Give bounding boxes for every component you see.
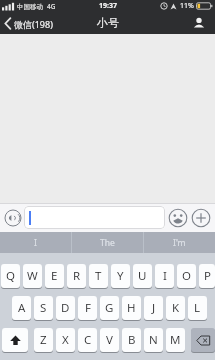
staticText: The (100, 237, 115, 249)
button[interactable]: K (166, 296, 185, 321)
button[interactable]: V (100, 328, 119, 353)
staticText: L (194, 300, 201, 316)
button[interactable] (2, 328, 28, 353)
staticText: V (106, 332, 113, 348)
staticText: F (85, 300, 91, 316)
staticText: D (61, 300, 70, 316)
button[interactable] (191, 328, 215, 353)
button[interactable]: 微信(198) (4, 17, 53, 30)
button[interactable]: T (89, 264, 108, 289)
button[interactable]: H (122, 296, 141, 321)
button[interactable]: The (72, 232, 143, 253)
button[interactable] (191, 208, 211, 228)
button[interactable]: Z (34, 328, 53, 353)
button[interactable]: O (177, 264, 196, 289)
staticText: Q (6, 268, 15, 284)
button[interactable]: L (188, 296, 207, 321)
button[interactable]: I (155, 264, 174, 289)
button[interactable] (168, 208, 188, 228)
button[interactable]: E (45, 264, 64, 289)
staticText: Y (117, 268, 124, 284)
staticText: U (138, 268, 147, 284)
button[interactable]: U (133, 264, 152, 289)
staticText: H (127, 300, 136, 316)
staticText: 微信(198) (14, 18, 53, 30)
staticText: O (182, 268, 191, 284)
button[interactable]: D (56, 296, 75, 321)
staticText: T (95, 268, 102, 284)
staticText: G (105, 300, 114, 316)
button[interactable]: G (100, 296, 119, 321)
staticText: B (128, 332, 136, 348)
staticText: A (18, 300, 26, 316)
button[interactable]: X (56, 328, 75, 353)
button[interactable]: C (78, 328, 97, 353)
button[interactable]: S (34, 296, 53, 321)
staticText: 小号 (97, 16, 119, 30)
staticText: R (73, 268, 81, 284)
button[interactable]: B (122, 328, 141, 353)
button[interactable]: J (144, 296, 163, 321)
staticText: I'm (173, 237, 186, 249)
button[interactable]: I (0, 232, 71, 253)
button[interactable]: F (78, 296, 97, 321)
button[interactable] (24, 206, 165, 229)
staticText: I (34, 237, 37, 249)
staticText: N (149, 332, 158, 348)
button[interactable]: N (144, 328, 163, 353)
staticText: 19:37 (99, 1, 117, 11)
button[interactable]: M (166, 328, 185, 353)
staticText: E (51, 268, 58, 284)
staticText: I (163, 268, 167, 284)
staticText: C (84, 332, 92, 348)
button[interactable] (191, 15, 207, 31)
staticText: X (62, 332, 69, 348)
staticText: S (40, 300, 47, 316)
staticText: 11% (180, 1, 194, 11)
staticText: 4G (47, 2, 56, 11)
button[interactable]: R (67, 264, 86, 289)
button[interactable]: P (199, 264, 215, 289)
button[interactable]: A (12, 296, 31, 321)
staticText: J (152, 300, 156, 316)
button[interactable]: Q (1, 264, 20, 289)
button[interactable]: W (23, 264, 42, 289)
staticText: M (170, 332, 181, 348)
button[interactable] (4, 209, 22, 227)
staticText: Z (40, 332, 47, 348)
staticText: W (27, 268, 38, 284)
button[interactable]: Y (111, 264, 130, 289)
button[interactable]: I'm (144, 232, 215, 253)
staticText: P (204, 268, 211, 284)
staticText: 中国移动 (17, 3, 43, 11)
staticText: K (172, 300, 180, 316)
